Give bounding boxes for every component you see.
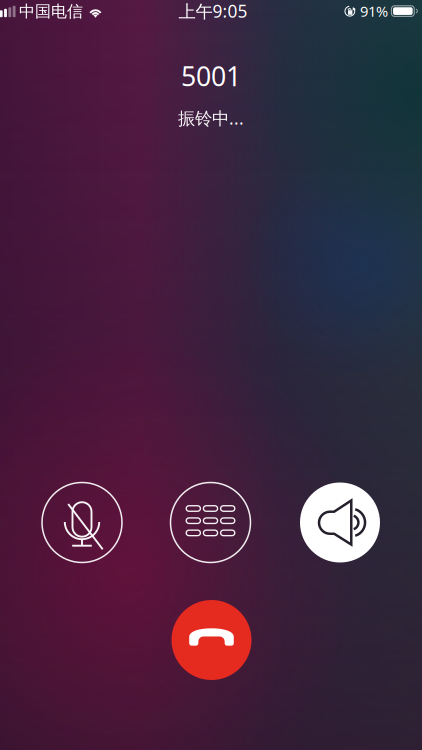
button[interactable]: Speaker xyxy=(300,482,380,562)
button[interactable]: End call xyxy=(171,600,251,680)
staticText: 5001 xyxy=(181,58,241,94)
button[interactable]: Mute xyxy=(42,482,122,562)
staticText: 91% xyxy=(360,1,388,21)
button[interactable]: Keypad xyxy=(170,482,250,562)
staticText: 上午9:05 xyxy=(178,0,247,23)
staticText: 振铃中... xyxy=(178,106,244,129)
staticText: 中国电信 xyxy=(19,2,83,21)
